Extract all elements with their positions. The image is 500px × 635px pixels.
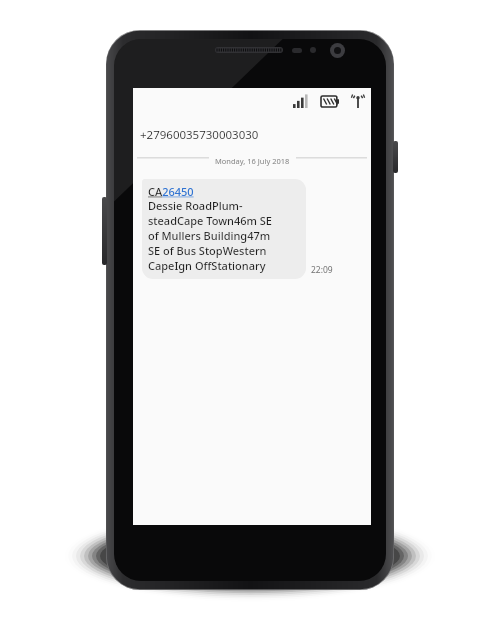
- other: Power: [393, 141, 398, 173]
- other: Network: [351, 94, 365, 108]
- other: Mobile signal: [293, 94, 309, 108]
- other: Battery: [321, 96, 339, 107]
- staticText: CA26450 Dessie RoadPlum- steadCape Town4…: [148, 184, 272, 274]
- staticText: Monday, 16 July 2018: [215, 156, 290, 166]
- button[interactable]: +27960035730003030: [140, 127, 259, 143]
- staticText: 22:09: [311, 264, 333, 276]
- button[interactable]: CA26450 Dessie RoadPlum- steadCape Town4…: [142, 179, 306, 279]
- other: Volume: [102, 197, 107, 265]
